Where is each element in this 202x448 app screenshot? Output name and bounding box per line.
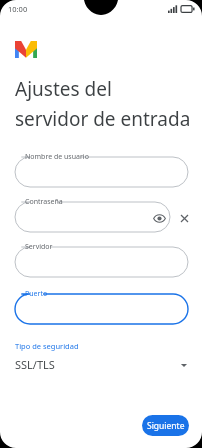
staticText: Tipo de seguridad — [15, 341, 79, 351]
button[interactable]: Servidor — [15, 247, 188, 277]
button[interactable]: Siguiente — [142, 415, 189, 436]
button[interactable]: Puerto — [15, 294, 188, 324]
staticText: Contraseña — [25, 197, 63, 207]
button[interactable]: Contraseña — [15, 202, 170, 232]
staticText: Siguiente — [147, 420, 185, 432]
button[interactable]: Nombre de usuario — [15, 157, 188, 187]
button[interactable]: Tipo de seguridad — [15, 341, 188, 372]
staticText: Nombre de usuario — [25, 152, 89, 162]
staticText: servidor de entrada — [15, 106, 191, 132]
button[interactable]: Borrar — [175, 209, 193, 227]
staticText: Ajustes del — [15, 76, 112, 102]
button[interactable]: Mostrar contraseña — [150, 209, 168, 227]
staticText: SSL/TLS — [15, 357, 55, 372]
staticText: 10:00 — [8, 4, 28, 14]
staticText: Puerto — [25, 289, 48, 299]
staticText: Servidor — [25, 242, 53, 252]
